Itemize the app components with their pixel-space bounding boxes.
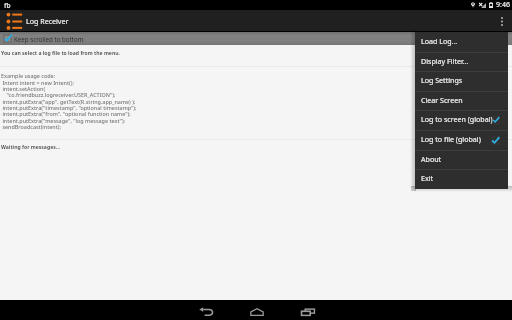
button[interactable]: Recents bbox=[292, 300, 322, 320]
staticText: Keep scrolled to bottom bbox=[14, 35, 84, 43]
button[interactable]: Back bbox=[190, 300, 220, 320]
staticText: Example usage code: bbox=[1, 72, 56, 79]
button[interactable]: Display Filter... bbox=[415, 52, 508, 72]
staticText: Log Receiver bbox=[26, 16, 69, 26]
staticText: 9:46 bbox=[496, 0, 510, 10]
staticText: You can select a log file to load from t… bbox=[1, 50, 120, 57]
staticText: fb bbox=[4, 1, 11, 10]
staticText: Intent intent = new Intent(); bbox=[1, 79, 74, 86]
staticText: Waiting for messages... bbox=[1, 144, 61, 151]
button[interactable]: About bbox=[415, 150, 508, 170]
staticText: sendBroadcast(intent); bbox=[1, 123, 61, 130]
button[interactable]: Log Settings bbox=[415, 71, 508, 91]
staticText: Log to screen (global) bbox=[421, 114, 493, 124]
button[interactable]: Keep scrolled to bottom bbox=[0, 32, 512, 45]
staticText: Log Settings bbox=[421, 75, 463, 85]
button[interactable]: More options bbox=[492, 10, 512, 32]
button[interactable]: Log to file (global) bbox=[415, 130, 508, 150]
staticText: intent.setAction( bbox=[1, 85, 46, 92]
staticText: Exit bbox=[421, 173, 434, 183]
button[interactable]: Clear Screen bbox=[415, 91, 508, 111]
button[interactable]: Load Log... bbox=[415, 32, 508, 52]
button[interactable]: Home bbox=[241, 300, 271, 320]
button[interactable]: Log to screen (global) bbox=[415, 110, 508, 130]
staticText: "co.friendbuzz.logreceiver.USER_ACTION")… bbox=[1, 91, 116, 98]
button[interactable]: Exit bbox=[415, 169, 508, 189]
staticText: Load Log... bbox=[421, 36, 458, 46]
staticText: intent.putExtra("from", "optional functi… bbox=[1, 110, 131, 117]
staticText: Display Filter... bbox=[421, 56, 469, 66]
staticText: intent.putExtra("app", getText(R.string.… bbox=[1, 98, 136, 105]
staticText: intent.putExtra("message", "log message … bbox=[1, 117, 126, 124]
staticText: intent.putExtra("timestamp", "optional t… bbox=[1, 104, 137, 111]
staticText: Clear Screen bbox=[421, 95, 463, 105]
staticText: Log to file (global) bbox=[421, 134, 481, 144]
staticText: About bbox=[421, 154, 442, 164]
